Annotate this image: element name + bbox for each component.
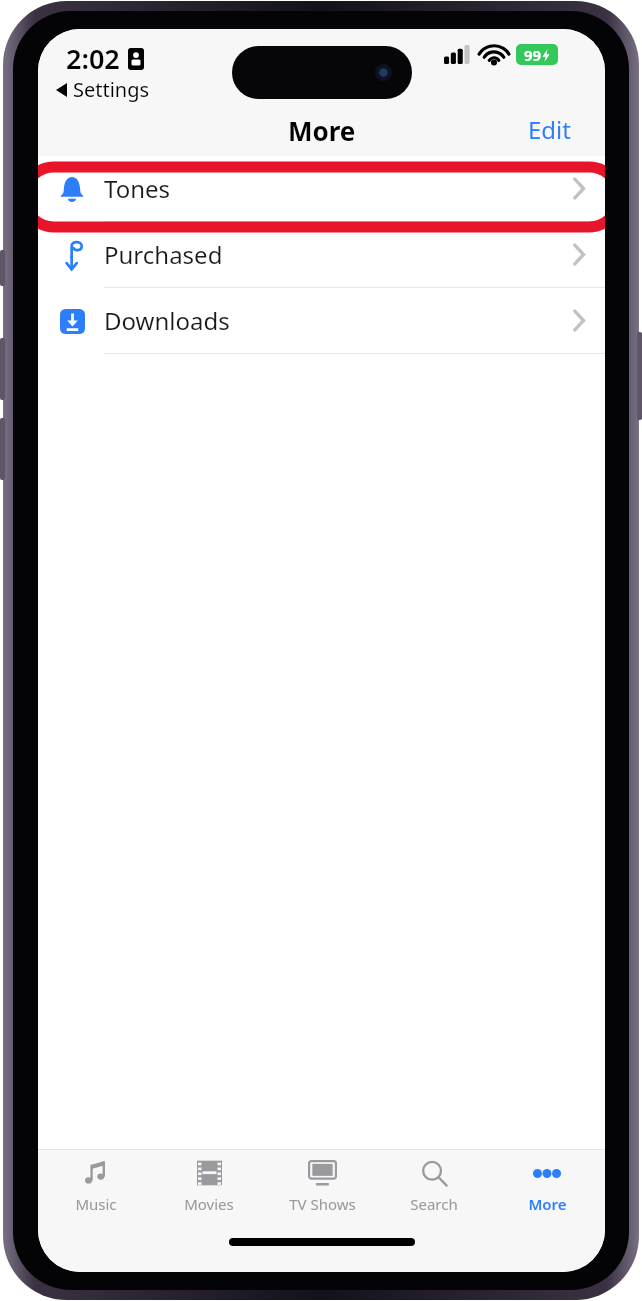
staticText: More	[288, 113, 356, 148]
staticText: Edit	[528, 113, 571, 146]
staticText: Movies	[184, 1194, 234, 1214]
button[interactable]: Music	[41, 1150, 151, 1214]
staticText: 2:02	[66, 40, 120, 77]
staticText: More	[528, 1194, 567, 1214]
button[interactable]: Settings	[52, 74, 154, 105]
staticText: Tones	[104, 172, 171, 205]
button[interactable]: Downloads	[38, 288, 605, 353]
staticText: 99	[524, 45, 542, 65]
staticText: TV Shows	[289, 1194, 356, 1214]
button[interactable]: Tones	[38, 156, 605, 221]
staticText: Search	[410, 1194, 458, 1214]
staticText: Downloads	[104, 304, 230, 337]
staticText: Settings	[73, 76, 150, 103]
button[interactable]: Purchased	[38, 222, 605, 287]
button[interactable]: Edit	[522, 109, 577, 150]
button[interactable]: Search	[379, 1150, 489, 1214]
button[interactable]: More	[492, 1150, 602, 1214]
staticText: Music	[75, 1194, 117, 1214]
other: More	[533, 1168, 561, 1178]
staticText: Purchased	[104, 238, 223, 271]
button[interactable]: Movies	[154, 1150, 264, 1214]
button[interactable]: TV Shows	[267, 1150, 377, 1214]
